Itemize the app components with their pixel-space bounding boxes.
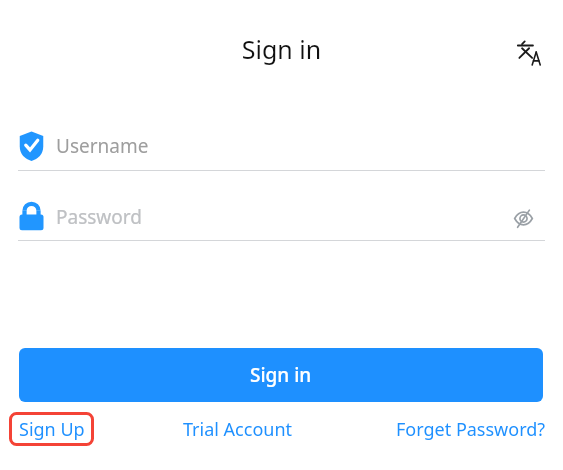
button[interactable]: Sign Up bbox=[9, 412, 94, 446]
staticText: Sign in bbox=[0, 32, 563, 66]
staticText: Password bbox=[56, 204, 142, 230]
button[interactable]: Sign in bbox=[19, 348, 543, 402]
staticText: Username bbox=[56, 133, 149, 159]
button[interactable]: Change language bbox=[508, 32, 550, 74]
staticText: Trial Account bbox=[183, 417, 293, 442]
staticText: Sign Up bbox=[19, 417, 85, 442]
button[interactable]: Trial Account bbox=[175, 414, 300, 444]
staticText: Forget Password? bbox=[396, 417, 546, 442]
button[interactable]: Username bbox=[18, 122, 545, 170]
button[interactable]: Show password bbox=[503, 198, 543, 238]
button[interactable]: Forget Password? bbox=[390, 414, 552, 444]
button[interactable]: Password bbox=[18, 194, 545, 240]
staticText: Sign in bbox=[250, 362, 312, 388]
